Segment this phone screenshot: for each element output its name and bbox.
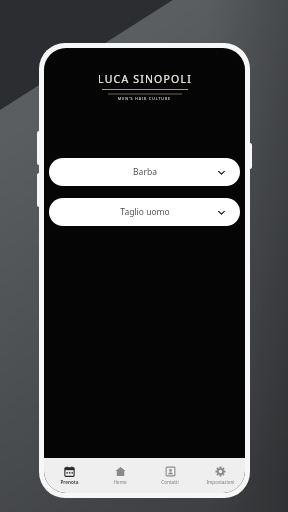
button[interactable]: Impostazioni [195,458,245,493]
staticText: Prenota [60,479,79,485]
button[interactable]: Prenota [44,458,95,493]
staticText: LUCA SINOPOLI [98,72,192,86]
button[interactable]: Barba [49,158,240,186]
button[interactable]: Taglio uomo [49,198,240,226]
staticText: Taglio uomo [120,206,170,218]
staticText: Impostazioni [206,479,235,485]
staticText: Home [113,479,127,485]
staticText: Contatti [161,479,179,485]
button[interactable]: Contatti [145,458,195,493]
button[interactable]: Home [95,458,145,493]
staticText: MEN'S HAIR CULTURE [118,96,171,101]
staticText: Barba [133,166,157,178]
